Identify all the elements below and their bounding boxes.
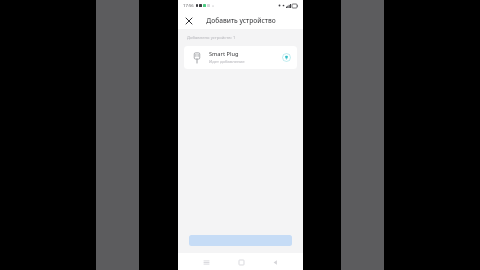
staticText: Добавлено устройств: 1 [187, 35, 236, 41]
staticText: Добавить устройство [206, 16, 276, 25]
button[interactable]: Недавние приложения [199, 255, 213, 269]
button[interactable]: Главный экран [234, 255, 248, 269]
staticText: Идет добавление [209, 59, 245, 65]
button[interactable]: Закрыть [182, 14, 195, 27]
staticText: Smart Plug [209, 50, 239, 58]
button[interactable]: Smart Plug [184, 46, 297, 69]
button[interactable]: Добавление устройства [282, 53, 291, 62]
staticText: 17:56 [183, 3, 194, 9]
button[interactable]: Назад [268, 255, 282, 269]
